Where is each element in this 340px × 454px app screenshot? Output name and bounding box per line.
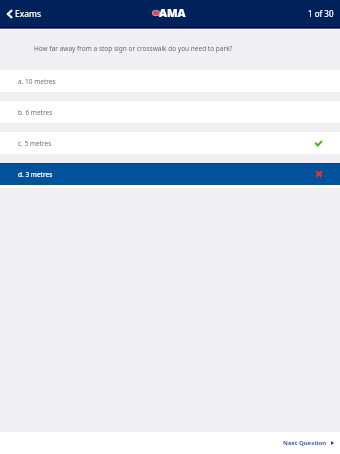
button[interactable]: Exams: [0, 2, 50, 26]
staticText: a. 10 metres: [18, 77, 56, 86]
staticText: AMA: [159, 5, 186, 20]
staticText: Exams: [15, 8, 42, 20]
staticText: c. 5 metres: [18, 139, 52, 148]
staticText: 1 of 30: [308, 8, 334, 19]
button[interactable]: d. 3 metres: [0, 163, 340, 185]
button[interactable]: Next Question: [273, 434, 340, 452]
other: Correct answer: [315, 141, 322, 146]
button[interactable]: c. 5 metres: [0, 132, 340, 154]
button[interactable]: a. 10 metres: [0, 70, 340, 92]
staticText: How far away from a stop sign or crosswa…: [34, 44, 233, 53]
staticText: d. 3 metres: [18, 170, 53, 179]
other: Incorrect answer: [316, 171, 322, 177]
staticText: Next Question: [283, 439, 327, 447]
staticText: b. 6 metres: [18, 108, 53, 117]
button[interactable]: b. 6 metres: [0, 101, 340, 123]
